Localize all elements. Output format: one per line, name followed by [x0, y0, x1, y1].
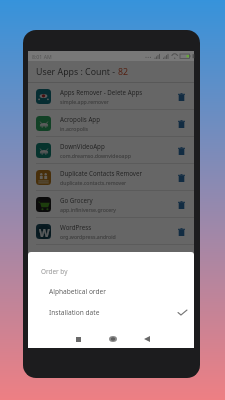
staticText: Installation date [49, 308, 100, 317]
staticText: duplicate.contacts.remover [60, 179, 127, 186]
staticText: WordPress [60, 223, 92, 231]
button[interactable]: Acropolis App [28, 110, 194, 137]
button[interactable]: Recents [70, 331, 86, 347]
staticText: Order by [41, 267, 68, 276]
button[interactable]: Delete [174, 171, 188, 185]
staticText: com.dreamso.downvideoapp [60, 152, 131, 159]
staticText: simple.app.remover [60, 98, 109, 105]
staticText: W [39, 225, 50, 239]
staticText: Acropolis App [60, 115, 100, 123]
staticText: User Apps : Count - [36, 66, 118, 78]
button[interactable]: Delete [174, 198, 188, 212]
button[interactable]: Apps Remover - Delete Apps [28, 83, 194, 110]
staticText: Apps Remover - Delete Apps [60, 88, 143, 96]
staticText: DownVideoApp [60, 142, 105, 150]
staticText: Duplicate Contacts Remover [60, 169, 143, 177]
button[interactable]: W [28, 218, 194, 245]
staticText: 82 [118, 66, 129, 78]
button[interactable]: Alphabetical order [28, 281, 194, 302]
button[interactable]: Back [139, 331, 155, 347]
button[interactable]: Delete [174, 117, 188, 131]
button[interactable]: Home [105, 331, 121, 347]
button[interactable]: Delete [174, 144, 188, 158]
button[interactable]: Installation date [28, 302, 194, 323]
staticText: org.wordpress.android [60, 233, 116, 240]
button[interactable]: Delete [174, 90, 188, 104]
staticText: app.infiniverse.grocery [60, 206, 116, 213]
staticText: Alphabetical order [49, 287, 106, 296]
staticText: Go Grocery [60, 196, 93, 204]
staticText: 8:01 AM [32, 53, 52, 60]
button[interactable]: Go Grocery [28, 191, 194, 218]
button[interactable]: Duplicate Contacts Remover [28, 164, 194, 191]
button[interactable]: DownVideoApp [28, 137, 194, 164]
button[interactable]: Delete [174, 225, 188, 239]
staticText: in.acropolis [60, 125, 89, 132]
